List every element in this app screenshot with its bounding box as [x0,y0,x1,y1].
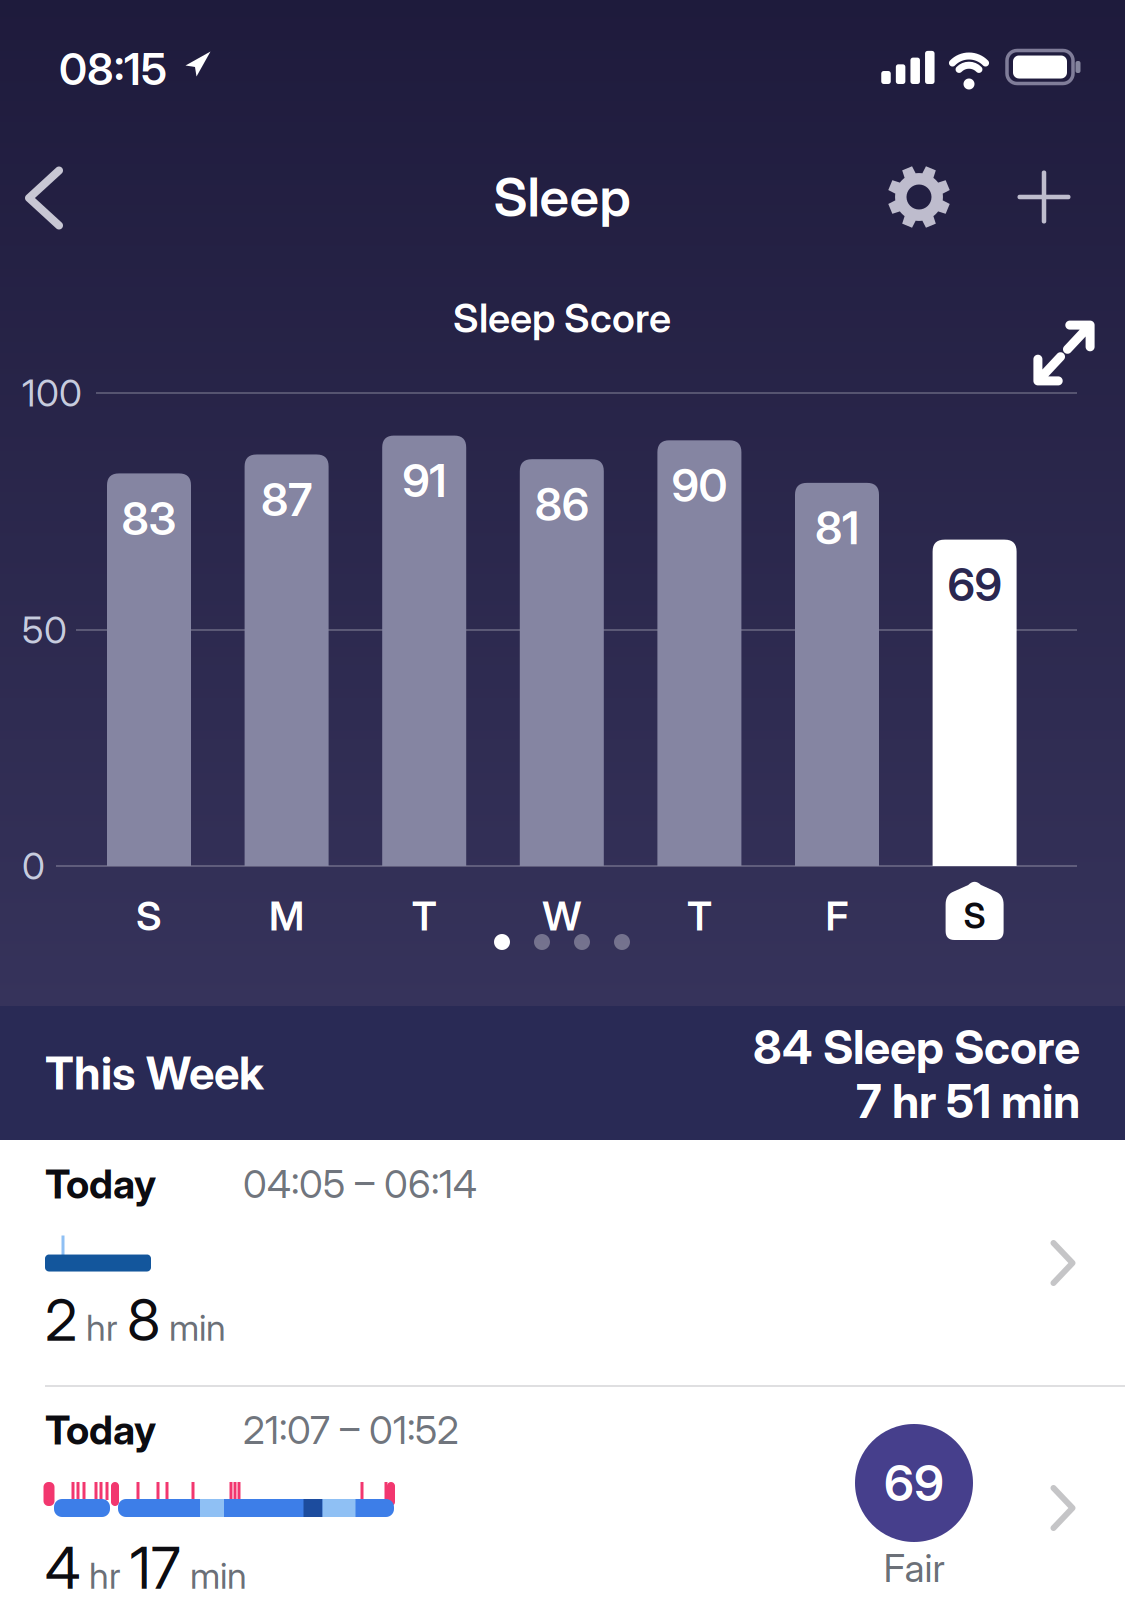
staticText: 50 [22,608,67,652]
staticText: Sleep Score [453,294,671,342]
staticText: 2 [45,1286,77,1354]
staticText: 7 hr 51 min [856,1073,1080,1129]
button[interactable]: Expand chart [1027,314,1101,392]
staticText: 69 [948,558,1002,611]
staticText: T [687,892,712,940]
button[interactable]: Settings [879,157,958,236]
staticText: min [169,1306,226,1349]
staticText: 81 [815,501,859,555]
staticText: This Week [45,1046,264,1100]
button[interactable]: Today [0,1140,1125,1385]
staticText: 17 [130,1534,181,1602]
staticText: 83 [121,492,176,545]
staticText: 84 Sleep Score [753,1019,1080,1075]
button[interactable]: Add [1007,160,1080,233]
staticText: 90 [671,459,727,512]
staticText: 08:15 [59,43,167,95]
staticText: Fair [883,1545,944,1591]
staticText: 21:07 – 01:52 [243,1407,459,1453]
staticText: S [964,896,986,936]
staticText: 86 [535,477,589,531]
staticText: W [542,892,581,940]
staticText: 04:05 – 06:14 [243,1161,477,1207]
staticText: 8 [127,1286,160,1354]
staticText: 0 [22,844,45,888]
staticText: M [269,892,304,940]
staticText: T [412,892,437,940]
staticText: hr [86,1306,118,1349]
staticText: S [136,892,162,940]
staticText: Sleep [493,165,630,228]
staticText: min [190,1554,247,1597]
staticText: 4 [45,1534,80,1602]
staticText: 100 [22,371,82,415]
button[interactable]: Back [15,156,73,239]
staticText: Today [45,1406,156,1454]
staticText: 87 [261,473,312,526]
staticText: 69 [884,1454,944,1512]
staticText: hr [89,1554,121,1597]
staticText: 91 [402,454,446,507]
button[interactable]: Today [0,1387,1125,1620]
staticText: Today [45,1160,156,1208]
staticText: F [825,892,848,940]
